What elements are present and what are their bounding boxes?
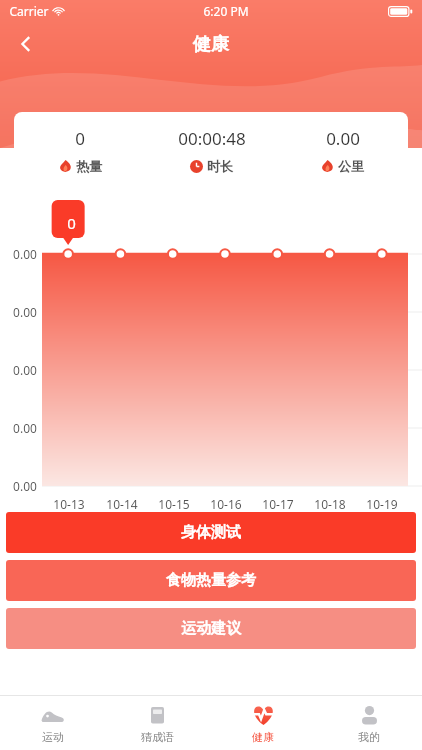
staticText: 0 bbox=[67, 213, 76, 233]
staticText: 食物热量参考 bbox=[166, 571, 256, 590]
staticText: 我的 bbox=[358, 730, 380, 744]
staticText: 10-17 bbox=[262, 496, 294, 512]
staticText: 10-16 bbox=[210, 496, 242, 512]
button[interactable]: 运动建议 bbox=[6, 608, 416, 649]
staticText: 0.00 bbox=[13, 362, 37, 378]
button[interactable]: 猜成语 bbox=[105, 696, 210, 750]
button[interactable]: 健康 bbox=[210, 696, 316, 750]
staticText: 0.00 bbox=[13, 246, 37, 262]
staticText: Carrier bbox=[9, 3, 49, 19]
staticText: 猜成语 bbox=[141, 730, 174, 744]
staticText: 运动建议 bbox=[181, 619, 241, 638]
staticText: 10-14 bbox=[106, 496, 138, 512]
staticText: 0 bbox=[75, 127, 85, 150]
staticText: 时长 bbox=[207, 158, 233, 174]
staticText: 10-15 bbox=[158, 496, 190, 512]
button[interactable]: 00:00:48 bbox=[146, 127, 277, 174]
button[interactable]: 食物热量参考 bbox=[6, 560, 416, 601]
button[interactable]: 0.00 bbox=[277, 127, 408, 174]
staticText: 0.00 bbox=[13, 304, 37, 320]
staticText: 0.00 bbox=[326, 127, 360, 150]
staticText: 6:20 PM bbox=[203, 3, 249, 19]
button[interactable]: 运动 bbox=[0, 696, 105, 750]
staticText: 10-18 bbox=[314, 496, 346, 512]
staticText: 00:00:48 bbox=[178, 127, 246, 150]
staticText: 10-13 bbox=[53, 496, 85, 512]
button[interactable]: 身体测试 bbox=[6, 512, 416, 553]
button[interactable]: 我的 bbox=[316, 696, 422, 750]
staticText: 身体测试 bbox=[181, 523, 241, 542]
staticText: 0.00 bbox=[13, 478, 37, 494]
staticText: 0.00 bbox=[13, 420, 37, 436]
staticText: 公里 bbox=[338, 158, 364, 174]
staticText: 健康 bbox=[252, 730, 274, 744]
button[interactable]: 0 bbox=[14, 127, 146, 174]
staticText: 健康 bbox=[193, 33, 229, 56]
button[interactable]: Back bbox=[6, 24, 46, 64]
staticText: 热量 bbox=[76, 158, 102, 174]
staticText: 10-19 bbox=[366, 496, 398, 512]
staticText: 运动 bbox=[42, 730, 64, 744]
